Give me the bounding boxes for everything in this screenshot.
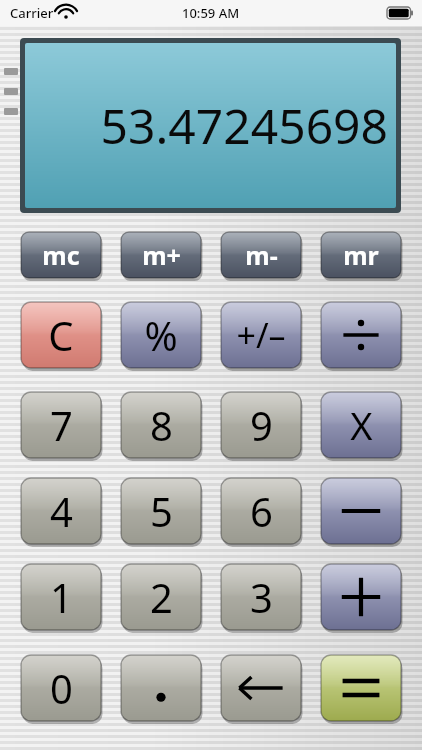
button[interactable]: m- — [221, 232, 301, 278]
button[interactable]: Backspace — [221, 655, 301, 721]
button[interactable]: 5 — [121, 478, 201, 544]
staticText: 53.47245698 — [100, 93, 388, 158]
staticText: m+ — [142, 238, 181, 272]
button[interactable]: % — [121, 302, 201, 368]
staticText: 4 — [50, 484, 73, 538]
staticText: Carrier — [10, 4, 54, 22]
button[interactable]: Equals — [321, 655, 401, 721]
staticText: m- — [245, 238, 278, 272]
staticText: 0 — [50, 661, 73, 715]
staticText: 5 — [150, 484, 173, 538]
staticText: % — [144, 308, 178, 362]
staticText: 8 — [150, 398, 173, 452]
staticText: mc — [42, 238, 80, 272]
button[interactable]: 2 — [121, 564, 201, 630]
button[interactable]: 9 — [221, 392, 301, 458]
staticText: 2 — [150, 570, 173, 624]
staticText: 1 — [50, 570, 73, 624]
button[interactable]: 4 — [21, 478, 101, 544]
button[interactable]: 3 — [221, 564, 301, 630]
staticText: 6 — [250, 484, 273, 538]
button[interactable]: +/– — [221, 302, 301, 368]
button[interactable]: 8 — [121, 392, 201, 458]
button[interactable]: C — [21, 302, 101, 368]
staticText: 10:59 AM — [182, 4, 240, 22]
button[interactable]: 6 — [221, 478, 301, 544]
staticText: 3 — [250, 570, 273, 624]
button[interactable]: m+ — [121, 232, 201, 278]
button[interactable]: X — [321, 392, 401, 458]
button[interactable]: Decimal point — [121, 655, 201, 721]
staticText: C — [48, 308, 74, 362]
button[interactable]: 7 — [21, 392, 101, 458]
button[interactable]: Plus — [321, 564, 401, 630]
button[interactable]: Divide — [321, 302, 401, 368]
button[interactable]: Minus — [321, 478, 401, 544]
staticText: 9 — [250, 398, 273, 452]
staticText: mr — [343, 238, 379, 272]
staticText: +/– — [236, 312, 286, 358]
staticText: 7 — [50, 398, 73, 452]
button[interactable]: mc — [21, 232, 101, 278]
button[interactable]: mr — [321, 232, 401, 278]
staticText: X — [350, 399, 373, 451]
button[interactable]: 0 — [21, 655, 101, 721]
button[interactable]: 1 — [21, 564, 101, 630]
